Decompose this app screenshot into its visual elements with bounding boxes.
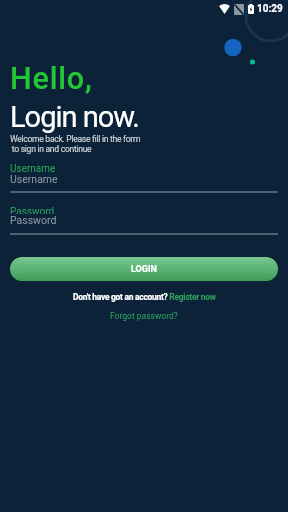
staticText: Password	[10, 214, 57, 226]
button[interactable]: Password	[10, 214, 278, 235]
staticText: Username	[10, 173, 58, 185]
button[interactable]: Don't have got an account? Register now	[73, 292, 216, 302]
button[interactable]: Forgot password?	[110, 311, 178, 321]
staticText: Username	[10, 163, 56, 173]
staticText: Welcome back. Please fill in the form to…	[10, 134, 141, 154]
staticText: Password	[10, 206, 55, 214]
staticText: Hello,	[10, 61, 93, 97]
button[interactable]: Username	[10, 173, 278, 193]
staticText: Login now.	[10, 100, 139, 134]
staticText: LOGIN	[131, 264, 157, 275]
button[interactable]: LOGIN	[10, 257, 278, 281]
staticText: 10:29	[257, 3, 283, 15]
